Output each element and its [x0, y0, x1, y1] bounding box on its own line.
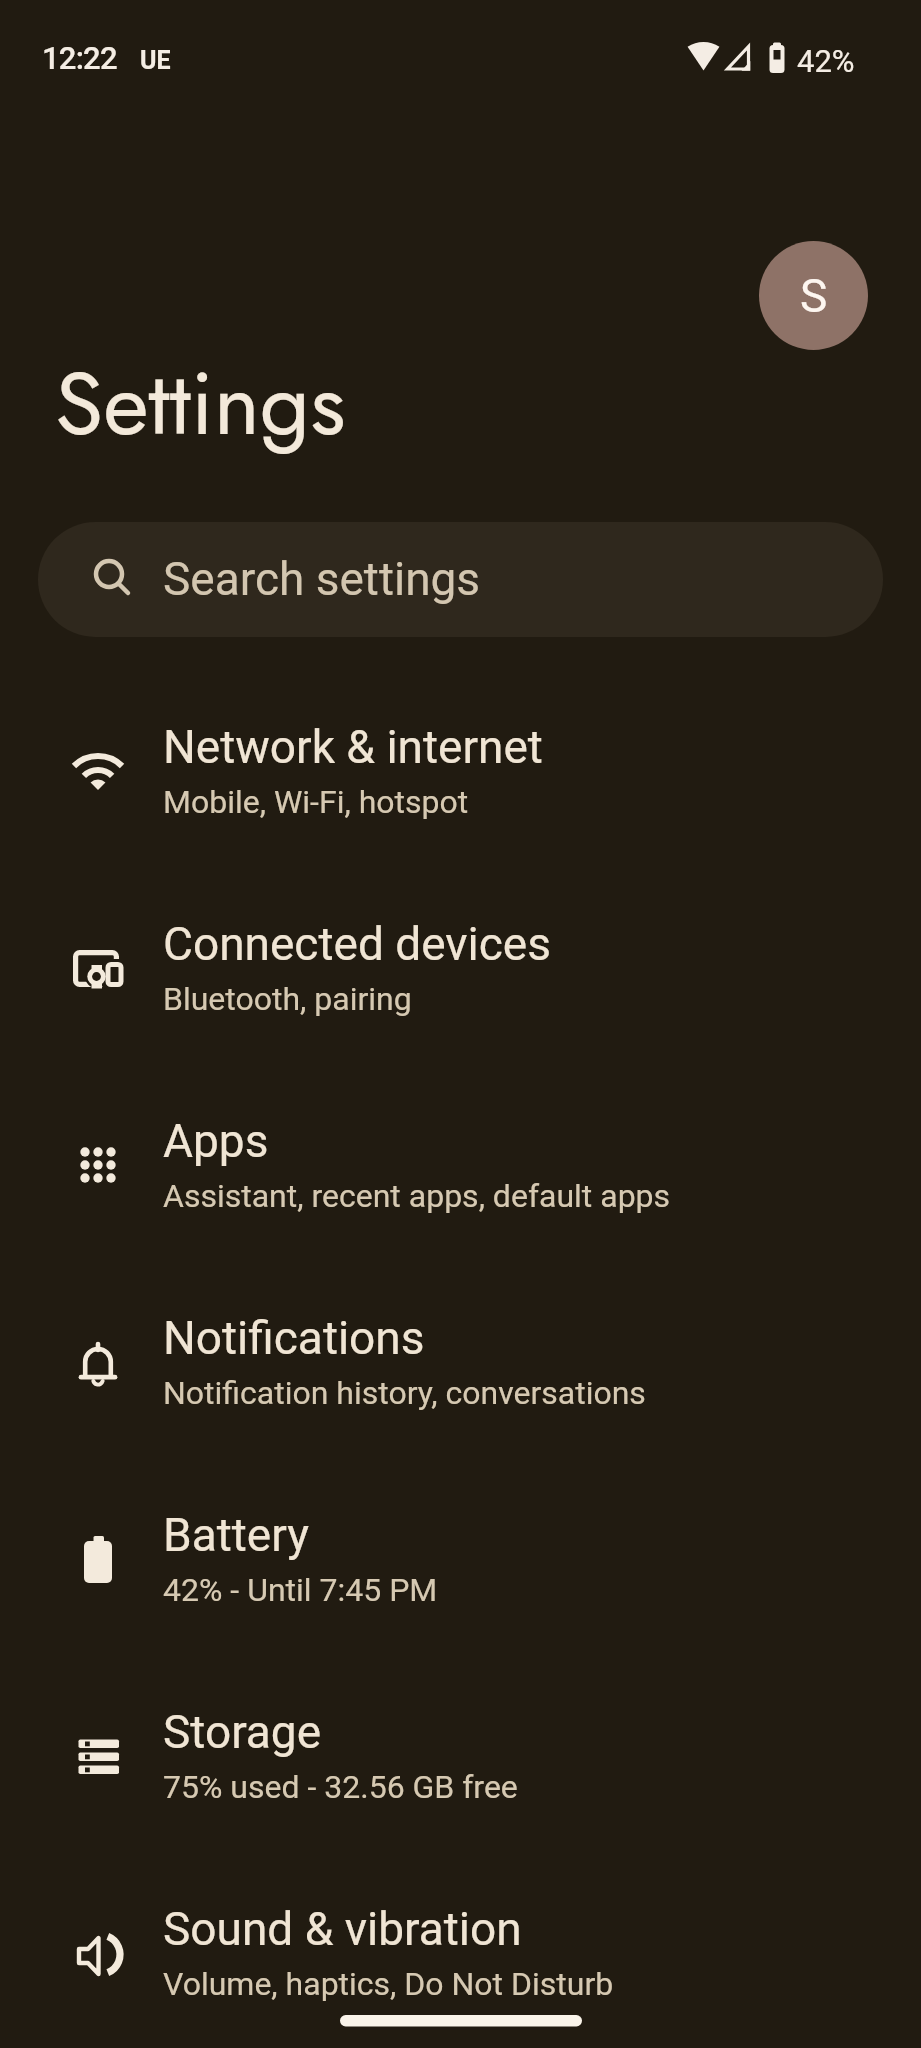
button[interactable]: Search settings [38, 522, 883, 637]
staticText: Bluetooth, pairing [163, 980, 412, 1018]
staticText: 42% [797, 43, 855, 79]
staticText: Notification history, conversations [163, 1374, 646, 1412]
staticText: Storage [163, 1705, 322, 1759]
staticText: 12:22 [42, 40, 117, 76]
staticText: 42% - Until 7:45 PM [163, 1571, 438, 1609]
staticText: 75% used - 32.56 GB free [163, 1768, 518, 1806]
button[interactable]: Notifications [0, 1267, 921, 1464]
button[interactable]: Battery [0, 1464, 921, 1661]
staticText: Battery [163, 1508, 309, 1562]
staticText: Connected devices [163, 917, 551, 971]
staticText: Settings [55, 340, 346, 467]
button[interactable]: Sound & vibration [0, 1858, 921, 2048]
staticText: S [800, 269, 828, 323]
staticText: Mobile, Wi-Fi, hotspot [163, 783, 469, 821]
staticText: Search settings [163, 552, 481, 606]
staticText: Apps [163, 1114, 269, 1168]
staticText: Sound & vibration [163, 1902, 522, 1956]
staticText: Assistant, recent apps, default apps [163, 1177, 671, 1215]
button[interactable]: Apps [0, 1070, 921, 1267]
button[interactable]: S [759, 241, 868, 350]
staticText: UE [140, 46, 171, 75]
button[interactable]: Network & internet [0, 676, 921, 873]
staticText: Volume, haptics, Do Not Disturb [163, 1965, 614, 2003]
button[interactable]: Storage [0, 1661, 921, 1858]
button[interactable]: Connected devices [0, 873, 921, 1070]
staticText: Notifications [163, 1311, 425, 1365]
staticText: Network & internet [163, 720, 543, 774]
